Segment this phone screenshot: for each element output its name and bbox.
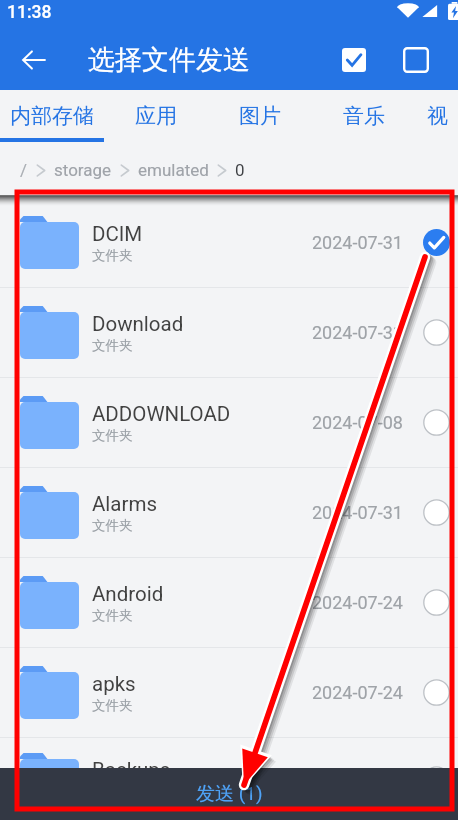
staticText: emulated <box>138 160 209 180</box>
staticText: 2024-07-31 <box>312 502 403 523</box>
button[interactable]: Select <box>414 558 458 647</box>
staticText: 0 <box>235 160 245 180</box>
staticText: 2024-07-31 <box>312 232 403 253</box>
staticText: 2024-07-24 <box>312 682 403 703</box>
button[interactable]: 发送 (1) <box>0 768 458 820</box>
staticText: 2024-07-08 <box>312 412 403 433</box>
button[interactable]: 音乐 <box>312 90 416 142</box>
staticText: 文件夹 <box>92 337 133 354</box>
staticText: 视 <box>427 103 448 129</box>
staticText: Download <box>92 312 184 336</box>
staticText: 文件夹 <box>92 697 133 714</box>
button[interactable]: Back <box>10 36 58 84</box>
staticText: 应用 <box>135 103 177 129</box>
button[interactable]: Android <box>0 558 458 647</box>
button[interactable]: ADDOWNLOAD <box>0 378 458 467</box>
button[interactable]: Select <box>414 288 458 377</box>
staticText: DCIM <box>92 222 143 246</box>
staticText: Backups <box>92 758 171 782</box>
button[interactable]: 图片 <box>208 90 312 142</box>
button[interactable]: apks <box>0 648 458 737</box>
staticText: apks <box>92 672 136 696</box>
button[interactable]: Select <box>414 468 458 557</box>
staticText: 图片 <box>239 103 281 129</box>
staticText: 文件夹 <box>92 247 133 264</box>
button[interactable]: Select all <box>332 38 376 82</box>
staticText: 音乐 <box>343 103 385 129</box>
button[interactable]: Select <box>414 648 458 737</box>
staticText: 文件夹 <box>92 607 133 624</box>
staticText: 选择文件发送 <box>88 43 250 77</box>
staticText: 2024-07-24 <box>312 592 403 613</box>
staticText: storage <box>54 160 112 180</box>
staticText: 发送 (1) <box>196 782 263 806</box>
staticText: 2024-07-31 <box>312 322 403 343</box>
staticText: 文件夹 <box>92 517 133 534</box>
button[interactable]: Select <box>414 738 458 820</box>
button[interactable]: 内部存储 <box>0 90 104 142</box>
button[interactable]: Select <box>414 198 458 287</box>
staticText: Alarms <box>92 492 158 516</box>
button[interactable]: Backups <box>0 738 458 820</box>
button[interactable]: Download <box>0 288 458 377</box>
button[interactable]: Deselect all <box>394 38 438 82</box>
staticText: / <box>20 160 28 180</box>
button[interactable]: DCIM <box>0 198 458 287</box>
button[interactable]: Alarms <box>0 468 458 557</box>
button[interactable]: 应用 <box>104 90 208 142</box>
staticText: 文件夹 <box>92 427 133 444</box>
staticText: ADDOWNLOAD <box>92 402 231 426</box>
button[interactable]: Select <box>414 378 458 467</box>
staticText: 11:38 <box>7 2 52 23</box>
staticText: Android <box>92 582 164 606</box>
button[interactable]: 视 <box>416 90 458 142</box>
staticText: 内部存储 <box>10 103 94 129</box>
